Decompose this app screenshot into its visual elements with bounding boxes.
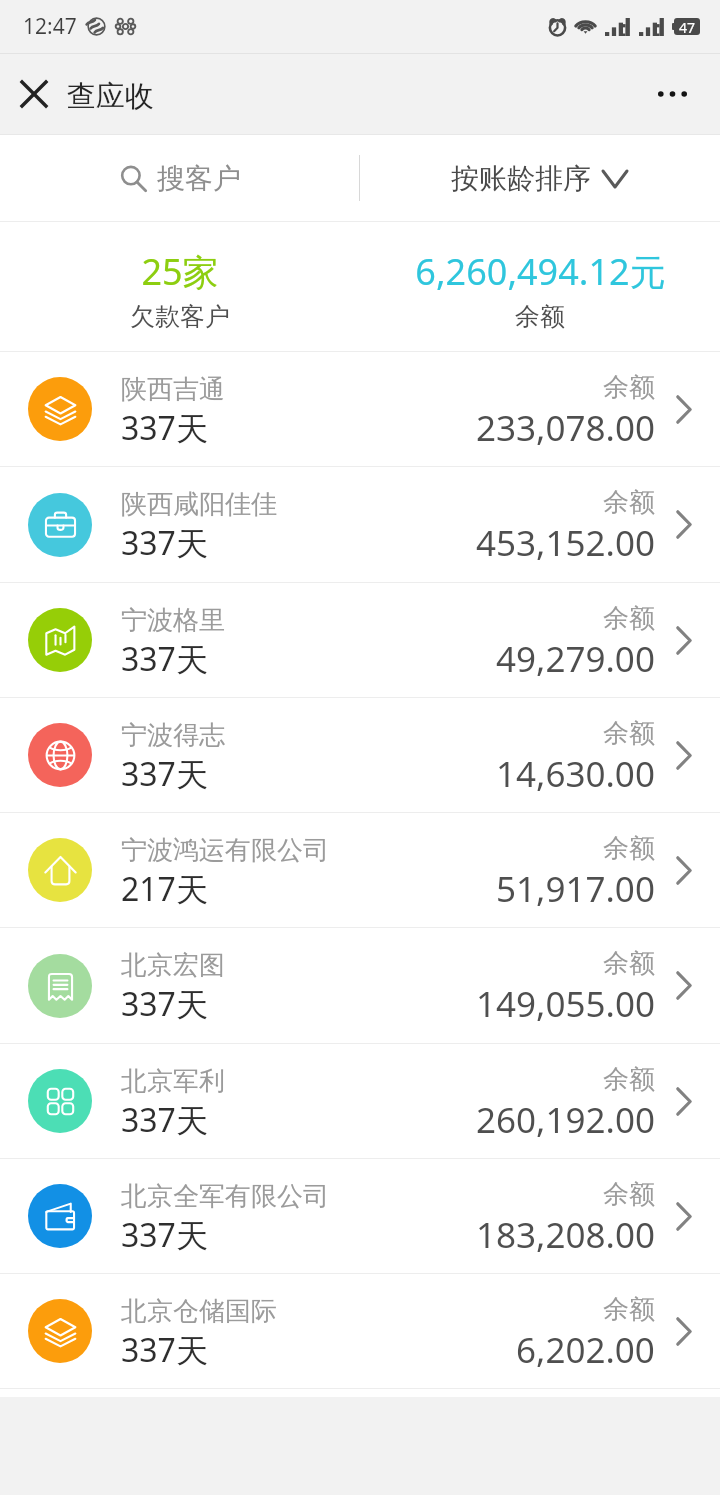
staticText: 47 — [679, 18, 696, 35]
staticText: 337天 — [121, 1213, 208, 1257]
button[interactable]: 陕西咸阳佳佳 — [0, 467, 720, 582]
staticText: 260,192.00 — [476, 1096, 655, 1144]
staticText: 宁波鸿运有限公司 — [121, 834, 329, 867]
button[interactable]: 宁波鸿运有限公司 — [0, 813, 720, 927]
staticText: 6,260,494.12元 — [415, 247, 666, 296]
button[interactable]: Close — [0, 54, 67, 134]
button[interactable]: 宁波得志 — [0, 698, 720, 812]
button[interactable]: 按账龄排序 — [360, 135, 720, 221]
staticText: 北京军利 — [121, 1065, 225, 1098]
staticText: 337天 — [121, 521, 208, 565]
staticText: 余额 — [603, 1178, 655, 1211]
staticText: 陕西咸阳佳佳 — [121, 488, 277, 521]
button[interactable]: 北京军利 — [0, 1044, 720, 1158]
staticText: 453,152.00 — [476, 519, 655, 567]
button[interactable]: 北京仓储国际 — [0, 1274, 720, 1388]
button[interactable]: 北京全军有限公司 — [0, 1159, 720, 1273]
staticText: 余额 — [603, 371, 655, 404]
staticText: 233,078.00 — [476, 404, 655, 452]
staticText: 25家 — [141, 247, 219, 296]
button[interactable]: More options — [625, 54, 720, 134]
staticText: 余额 — [603, 1063, 655, 1096]
button[interactable]: 宁波格里 — [0, 583, 720, 697]
button[interactable]: 搜客户 — [0, 135, 359, 221]
staticText: 北京全军有限公司 — [121, 1180, 329, 1213]
staticText: 12:47 — [23, 12, 77, 41]
staticText: 余额 — [603, 947, 655, 980]
staticText: 余额 — [603, 486, 655, 519]
staticText: 337天 — [121, 752, 208, 796]
staticText: 欠款客户 — [130, 301, 230, 332]
staticText: 14,630.00 — [496, 750, 655, 798]
staticText: 搜客户 — [157, 161, 241, 196]
staticText: 149,055.00 — [476, 980, 655, 1028]
staticText: 按账龄排序 — [451, 161, 591, 196]
staticText: 北京仓储国际 — [121, 1295, 277, 1328]
staticText: 余额 — [603, 1293, 655, 1326]
staticText: 183,208.00 — [476, 1211, 655, 1259]
staticText: 陕西吉通 — [121, 373, 225, 406]
button[interactable]: 陕西吉通 — [0, 352, 720, 466]
staticText: 北京宏图 — [121, 949, 225, 982]
staticText: 337天 — [121, 637, 208, 681]
staticText: 217天 — [121, 867, 208, 911]
staticText: 查应收 — [67, 78, 154, 115]
staticText: 49,279.00 — [496, 635, 655, 683]
staticText: 余额 — [515, 301, 565, 332]
staticText: 337天 — [121, 982, 208, 1026]
staticText: 宁波格里 — [121, 604, 225, 637]
button[interactable]: 北京宏图 — [0, 928, 720, 1043]
staticText: 宁波得志 — [121, 719, 225, 752]
staticText: 51,917.00 — [496, 865, 655, 913]
staticText: 余额 — [603, 602, 655, 635]
staticText: 337天 — [121, 406, 208, 450]
staticText: 余额 — [603, 832, 655, 865]
staticText: 337天 — [121, 1328, 208, 1372]
staticText: 余额 — [603, 717, 655, 750]
staticText: 337天 — [121, 1098, 208, 1142]
staticText: 6,202.00 — [516, 1326, 655, 1374]
